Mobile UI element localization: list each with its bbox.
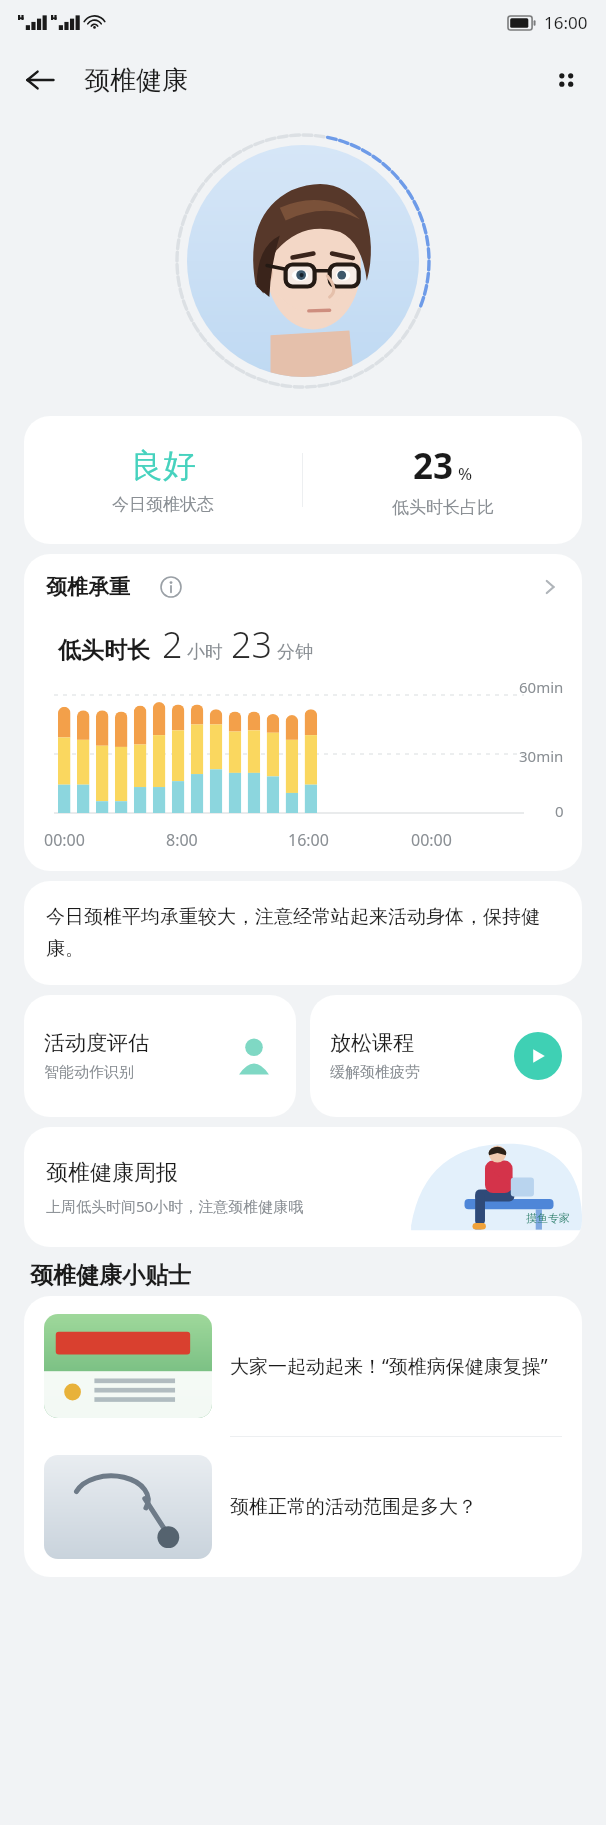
button[interactable]: 颈椎正常的活动范围是多大？ <box>24 1437 582 1577</box>
staticText: 颈椎承重 <box>46 574 130 600</box>
staticText: 颈椎健康周报 <box>46 1159 178 1187</box>
staticText: 活动度评估 <box>44 1030 149 1056</box>
staticText: 2 <box>162 620 183 669</box>
staticText: 智能动作识别 <box>44 1063 134 1082</box>
staticText: 摸鱼专家 <box>526 1211 570 1225</box>
button[interactable]: 颈椎承重 <box>24 554 582 620</box>
button[interactable]: 大家一起动起来！“颈椎病保健康复操” <box>24 1296 582 1436</box>
staticText: 大家一起动起来！“颈椎病保健康复操” <box>230 1353 548 1379</box>
staticText: 60min <box>519 677 564 697</box>
staticText: 放松课程 <box>330 1030 414 1056</box>
staticText: % <box>458 462 473 485</box>
staticText: 30min <box>519 746 564 766</box>
staticText: 00:00 <box>44 829 85 851</box>
staticText: 23 <box>231 620 273 669</box>
button[interactable]: More options <box>540 54 592 106</box>
staticText: 低头时长占比 <box>392 497 494 518</box>
staticText: 分钟 <box>277 641 313 664</box>
staticText: 上周低头时间50小时，注意颈椎健康哦 <box>46 1196 304 1216</box>
button[interactable]: 放松课程 <box>310 995 582 1117</box>
button[interactable]: 活动度评估 <box>24 995 296 1117</box>
staticText: 低头时长 <box>58 636 150 665</box>
staticText: 小时 <box>187 641 223 664</box>
button[interactable]: 今日颈椎平均承重较大，注意经常站起来活动身体，保持健康。 <box>24 881 582 985</box>
staticText: 00:00 <box>411 829 452 851</box>
staticText: 23 <box>413 442 454 490</box>
button[interactable]: 颈椎健康周报 <box>24 1127 582 1247</box>
staticText: 今日颈椎平均承重较大，注意经常站起来活动身体，保持健康。 <box>46 905 560 961</box>
staticText: 16:00 <box>288 829 329 851</box>
staticText: 良好 <box>130 445 196 487</box>
staticText: 颈椎健康小贴士 <box>30 1261 191 1290</box>
staticText: 8:00 <box>166 829 198 851</box>
staticText: 颈椎正常的活动范围是多大？ <box>230 1495 477 1519</box>
staticText: 缓解颈椎疲劳 <box>330 1063 420 1082</box>
button[interactable]: 良好 <box>24 416 582 544</box>
staticText: 16:00 <box>544 11 588 34</box>
staticText: 颈椎健康 <box>84 64 188 97</box>
button[interactable]: Back <box>14 54 66 106</box>
staticText: 0 <box>555 801 564 821</box>
button[interactable] <box>187 145 419 377</box>
staticText: 今日颈椎状态 <box>112 494 214 515</box>
